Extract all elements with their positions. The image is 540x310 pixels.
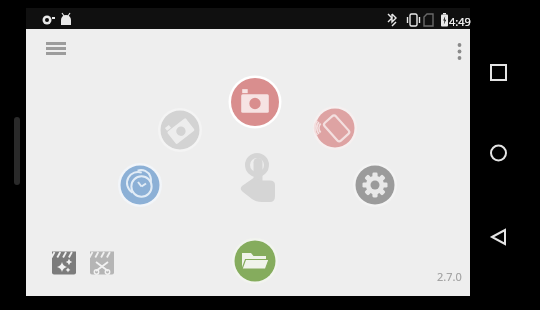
button[interactable]: Trim video: [88, 250, 116, 278]
button[interactable]: Menu: [38, 36, 74, 66]
button[interactable]: Touch control: [238, 155, 282, 205]
button[interactable]: Video effects: [50, 250, 78, 278]
button[interactable]: Back: [484, 223, 514, 253]
button[interactable]: Settings: [355, 165, 395, 205]
button[interactable]: Home: [484, 139, 514, 169]
button[interactable]: Screen record: [160, 110, 200, 150]
button[interactable]: Recents: [484, 58, 514, 88]
staticText: 4:49: [449, 14, 471, 29]
staticText: 2.7.0: [437, 269, 462, 284]
button[interactable]: Files: [234, 240, 276, 282]
button[interactable]: Timer: [120, 165, 160, 205]
button[interactable]: More options: [446, 36, 476, 68]
button[interactable]: Camera: [231, 78, 279, 126]
button[interactable]: Ringer mode: [315, 108, 355, 148]
